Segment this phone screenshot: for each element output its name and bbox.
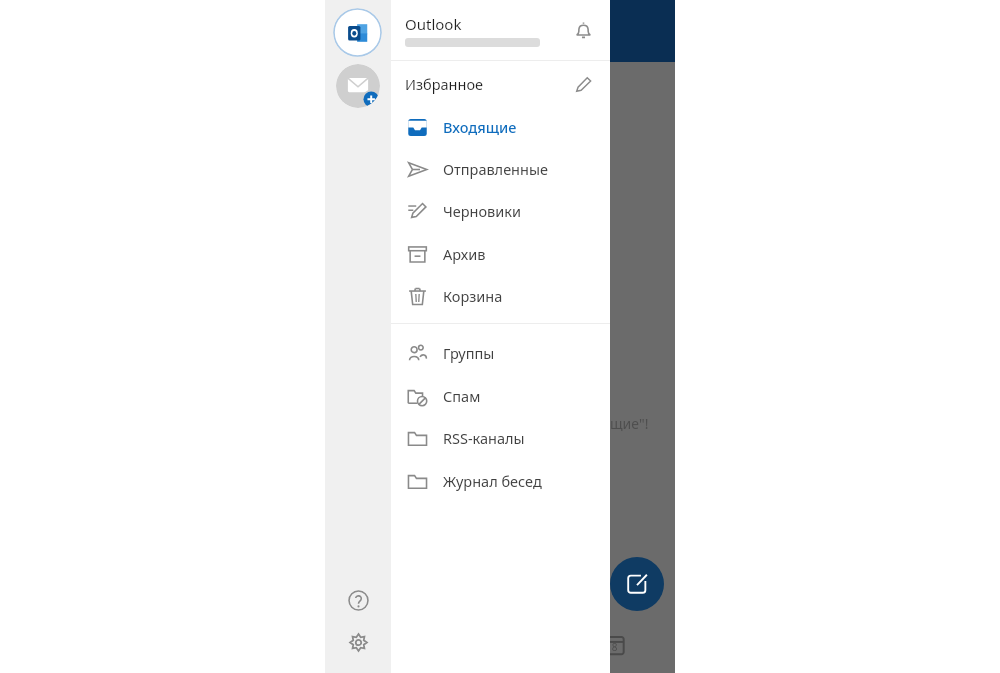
- button[interactable]: Settings: [344, 628, 372, 656]
- staticText: Входящие: [443, 117, 517, 137]
- button[interactable]: Отправленные: [391, 148, 610, 190]
- button[interactable]: Add account: [336, 64, 380, 108]
- staticText: Избранное: [405, 74, 483, 94]
- button[interactable]: Help: [344, 586, 372, 614]
- staticText: Группы: [443, 343, 495, 363]
- button[interactable]: Журнал бесед: [391, 460, 610, 502]
- button[interactable]: Группы: [391, 332, 610, 374]
- button[interactable]: Notifications: [566, 13, 600, 47]
- staticText: 18: [606, 640, 618, 654]
- button[interactable]: Compose: [610, 557, 664, 611]
- button[interactable]: Входящие: [391, 106, 610, 148]
- button[interactable]: Архив: [391, 233, 610, 275]
- button[interactable]: Черновики: [391, 190, 610, 232]
- staticText: Отправленные: [443, 159, 548, 179]
- button[interactable]: RSS-каналы: [391, 417, 610, 459]
- staticText: RSS-каналы: [443, 428, 525, 448]
- staticText: Архив: [443, 244, 486, 264]
- button[interactable]: Outlook account: [333, 8, 382, 57]
- button[interactable]: Edit favorites: [566, 67, 600, 101]
- button[interactable]: Корзина: [391, 275, 610, 317]
- staticText: Корзина: [443, 286, 503, 306]
- staticText: Черновики: [443, 201, 521, 221]
- staticText: Спам: [443, 386, 481, 406]
- button[interactable]: Спам: [391, 375, 610, 417]
- staticText: Outlook: [405, 14, 462, 34]
- staticText: щие"!: [610, 414, 649, 433]
- staticText: Журнал бесед: [443, 471, 542, 491]
